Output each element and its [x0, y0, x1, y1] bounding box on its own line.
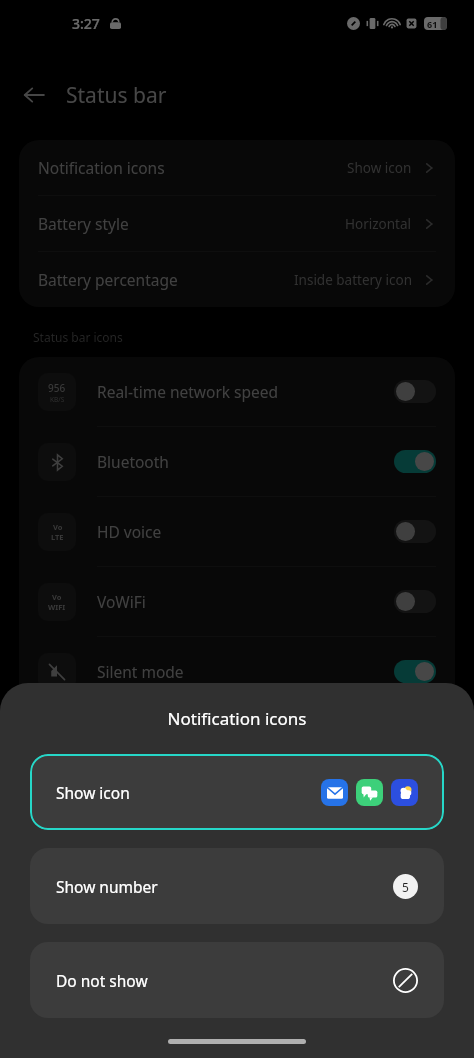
button[interactable]: Vo: [19, 497, 455, 566]
button[interactable]: Silent mode: [19, 637, 455, 706]
staticText: WIFI: [48, 602, 66, 612]
staticText: Status bar: [66, 81, 167, 110]
staticText: Real-time network speed: [97, 381, 279, 402]
button[interactable]: Show number: [30, 848, 444, 924]
staticText: 956: [48, 381, 66, 395]
staticText: Show icon: [347, 159, 412, 177]
button[interactable]: 956: [19, 357, 455, 426]
button[interactable]: Back: [12, 73, 56, 117]
button[interactable]: [394, 450, 436, 473]
staticText: KB/S: [50, 395, 65, 404]
staticText: Notification icons: [0, 707, 474, 730]
staticText: Bluetooth: [97, 451, 169, 472]
staticText: LTE: [51, 532, 64, 542]
staticText: Status bar icons: [33, 329, 123, 345]
staticText: 5: [402, 879, 409, 895]
staticText: Horizontal: [345, 215, 412, 233]
staticText: 61: [427, 18, 438, 30]
staticText: Notification icons: [38, 157, 165, 178]
button[interactable]: Battery percentage: [19, 252, 455, 307]
staticText: Show number: [56, 876, 158, 897]
staticText: VoWiFi: [97, 591, 146, 612]
staticText: Show icon: [56, 782, 130, 803]
button[interactable]: [394, 380, 436, 403]
button[interactable]: Do not show: [30, 942, 444, 1018]
button[interactable]: Vo: [19, 567, 455, 636]
button[interactable]: Battery style: [19, 196, 455, 251]
staticText: Battery style: [38, 213, 129, 234]
staticText: Battery percentage: [38, 269, 178, 290]
staticText: Inside battery icon: [294, 271, 412, 289]
staticText: Silent mode: [97, 661, 184, 682]
button[interactable]: [394, 520, 436, 543]
staticText: Vo: [52, 592, 62, 602]
staticText: Do not show: [56, 970, 148, 991]
staticText: Vo: [53, 522, 63, 532]
button[interactable]: Show icon: [30, 754, 444, 830]
button[interactable]: Bluetooth: [19, 427, 455, 496]
button[interactable]: [394, 660, 436, 683]
staticText: 3:27: [72, 14, 100, 33]
staticText: HD voice: [97, 521, 162, 542]
button[interactable]: Notification icons: [19, 140, 455, 195]
button[interactable]: [394, 590, 436, 613]
